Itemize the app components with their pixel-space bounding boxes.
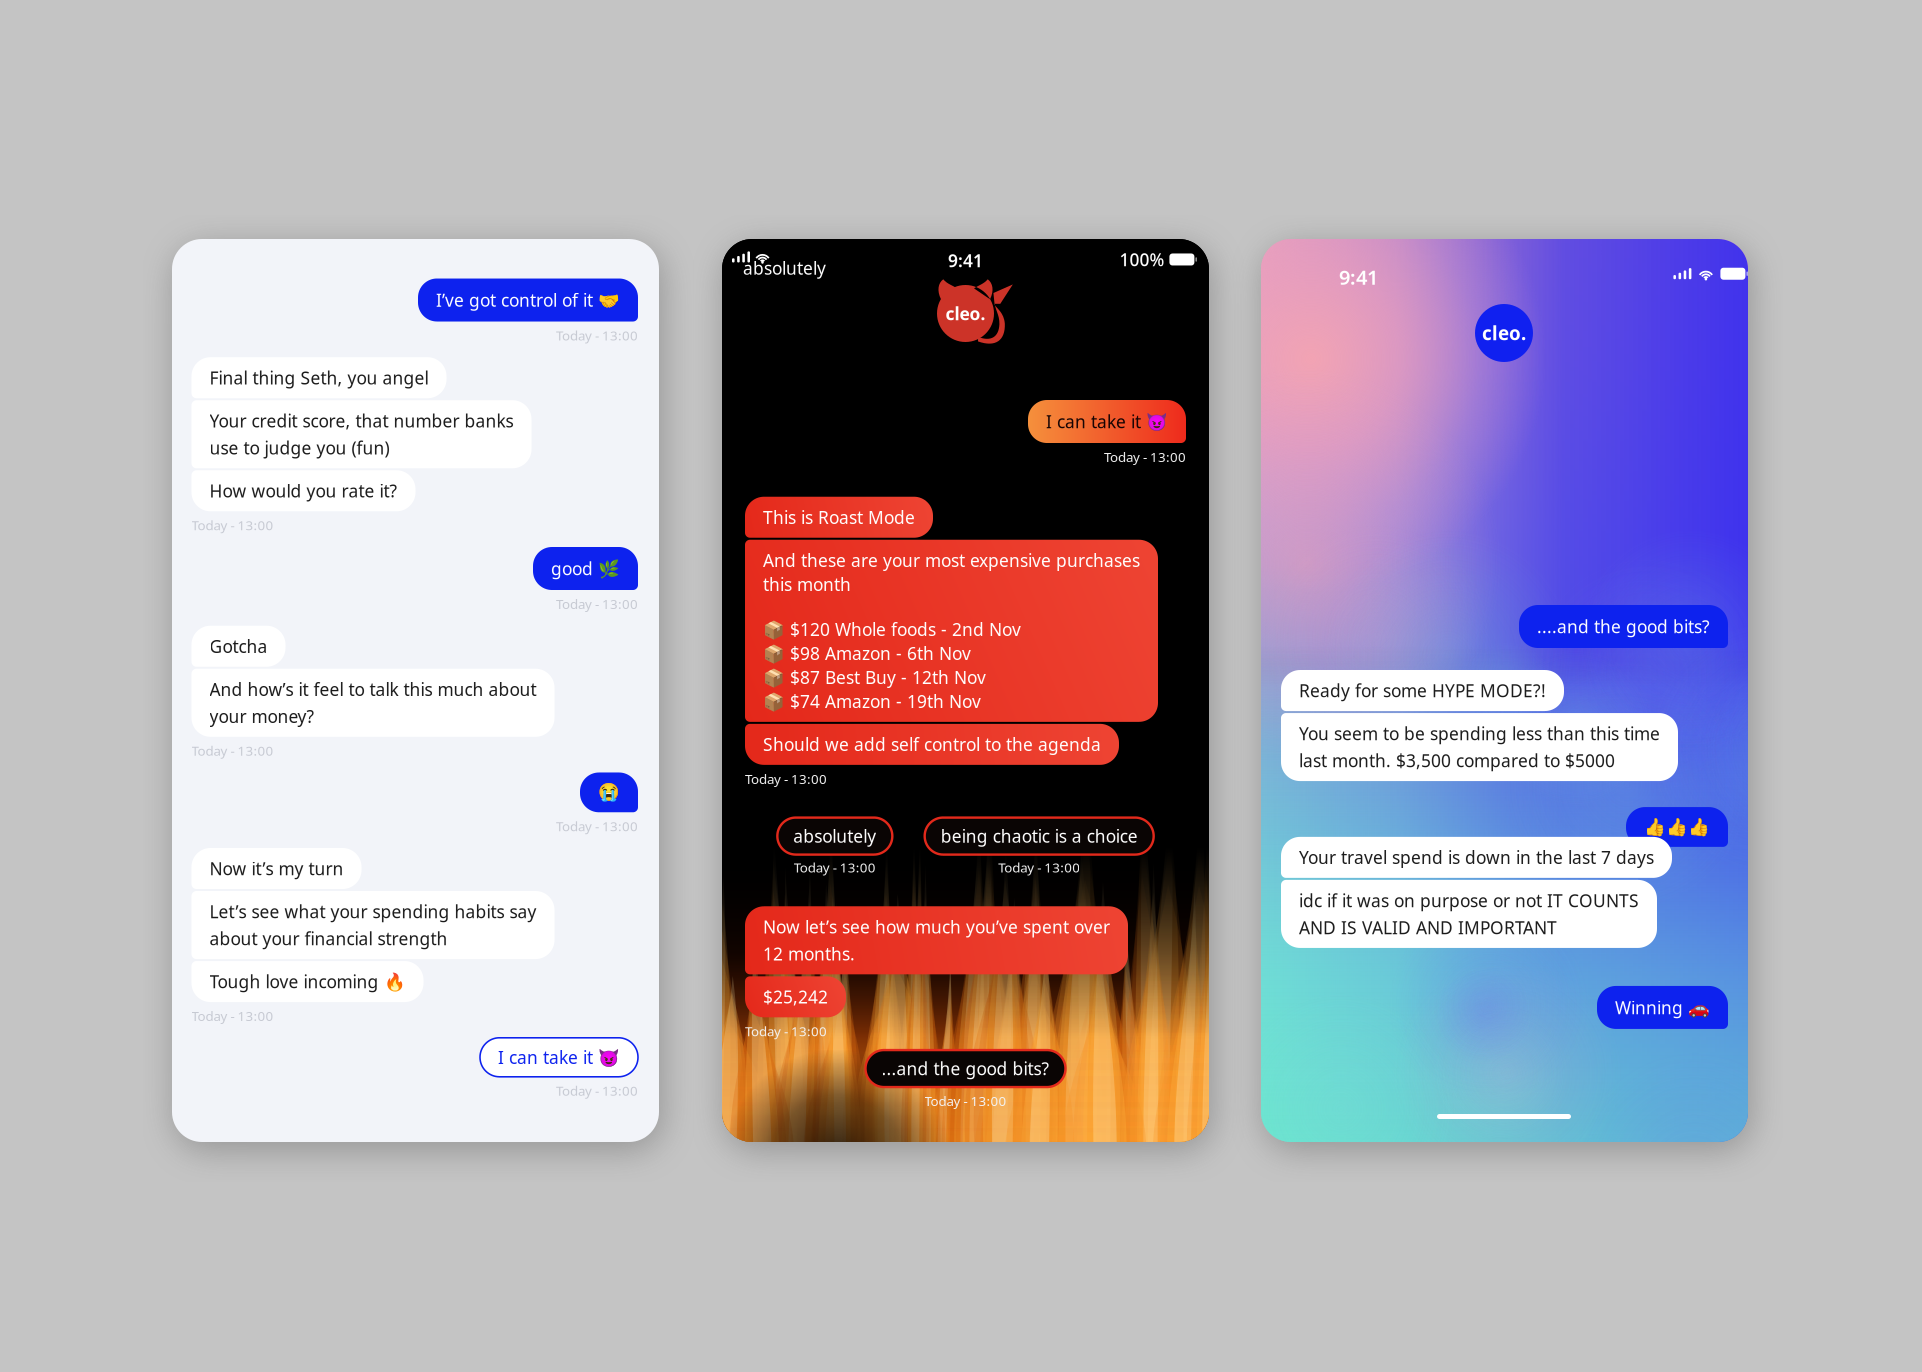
staticText: Today - 13:00 — [556, 326, 638, 344]
button[interactable]: good 🌿 — [533, 547, 638, 590]
staticText: Ready for some HYPE MODE?! — [1299, 679, 1546, 702]
staticText: Today - 13:00 — [924, 1092, 1006, 1110]
button[interactable]: I’ve got control of it 🤝 — [418, 278, 638, 321]
button[interactable]: being chaotic is a choice — [925, 818, 1154, 855]
button[interactable]: 👍👍👍 — [1626, 807, 1728, 847]
staticText: Now let’s see how much you’ve spent over… — [763, 915, 1110, 965]
staticText: 📦 $120 Whole foods - 2nd Nov 📦 $98 Amazo… — [763, 618, 1021, 713]
staticText: 100% — [1119, 248, 1164, 271]
staticText: This is Roast Mode — [763, 506, 915, 529]
staticText: $25,242 — [763, 985, 828, 1008]
button[interactable]: I can take it 😈 — [480, 1038, 638, 1077]
staticText: cleo. — [945, 302, 985, 325]
staticText: Gotcha — [209, 635, 267, 658]
button[interactable]: ....and the good bits? — [1519, 605, 1728, 648]
staticText: 👍👍👍 — [1644, 817, 1710, 837]
staticText: idc if it was on purpose or not IT COUNT… — [1299, 889, 1639, 939]
staticText: cleo. — [1482, 321, 1526, 345]
staticText: And these are your most expensive purcha… — [763, 549, 1140, 596]
staticText: Final thing Seth, you angel — [209, 366, 428, 389]
staticText: Today - 13:00 — [794, 859, 876, 876]
staticText: Today - 13:00 — [1104, 448, 1186, 466]
staticText: Today - 13:00 — [998, 859, 1080, 876]
staticText: Today - 13:00 — [191, 516, 273, 534]
staticText: Winning 🚗 — [1615, 996, 1710, 1019]
staticText: Today - 13:00 — [191, 742, 273, 759]
staticText: You seem to be spending less than this t… — [1299, 722, 1660, 772]
staticText: Today - 13:00 — [556, 595, 638, 613]
staticText: And how’s it feel to talk this much abou… — [209, 678, 536, 728]
staticText: 9:41 — [948, 249, 983, 272]
button[interactable]: I can take it 😈 — [1028, 400, 1186, 443]
staticText: ...and the good bits? — [881, 1057, 1049, 1080]
staticText: absolutely — [743, 256, 826, 279]
button[interactable]: ...and the good bits? — [865, 1050, 1065, 1087]
staticText: good 🌿 — [551, 557, 620, 580]
staticText: Today - 13:00 — [745, 1022, 827, 1040]
staticText: Now it’s my turn — [209, 857, 343, 880]
staticText: absolutely — [793, 825, 876, 848]
staticText: Today - 13:00 — [745, 770, 827, 788]
button[interactable]: 😭 — [580, 772, 638, 812]
staticText: Your travel spend is down in the last 7 … — [1299, 846, 1654, 869]
staticText: Today - 13:00 — [556, 1082, 638, 1099]
staticText: I’ve got control of it 🤝 — [436, 288, 620, 311]
staticText: Your credit score, that number banks use… — [209, 409, 513, 459]
staticText: Today - 13:00 — [556, 817, 638, 835]
staticText: I can take it 😈 — [498, 1046, 620, 1069]
staticText: Tough love incoming 🔥 — [209, 970, 405, 993]
button[interactable]: Winning 🚗 — [1597, 986, 1728, 1029]
staticText: Today - 13:00 — [191, 1007, 273, 1025]
staticText: 9:41 — [1339, 264, 1378, 290]
staticText: Should we add self control to the agenda — [763, 733, 1101, 756]
staticText: 😭 — [598, 782, 620, 802]
staticText: ....and the good bits? — [1537, 615, 1710, 638]
staticText: Let’s see what your spending habits say … — [209, 900, 536, 950]
staticText: I can take it 😈 — [1046, 410, 1168, 433]
button[interactable]: absolutely — [777, 818, 892, 855]
staticText: How would you rate it? — [209, 479, 397, 502]
staticText: being chaotic is a choice — [941, 825, 1138, 848]
